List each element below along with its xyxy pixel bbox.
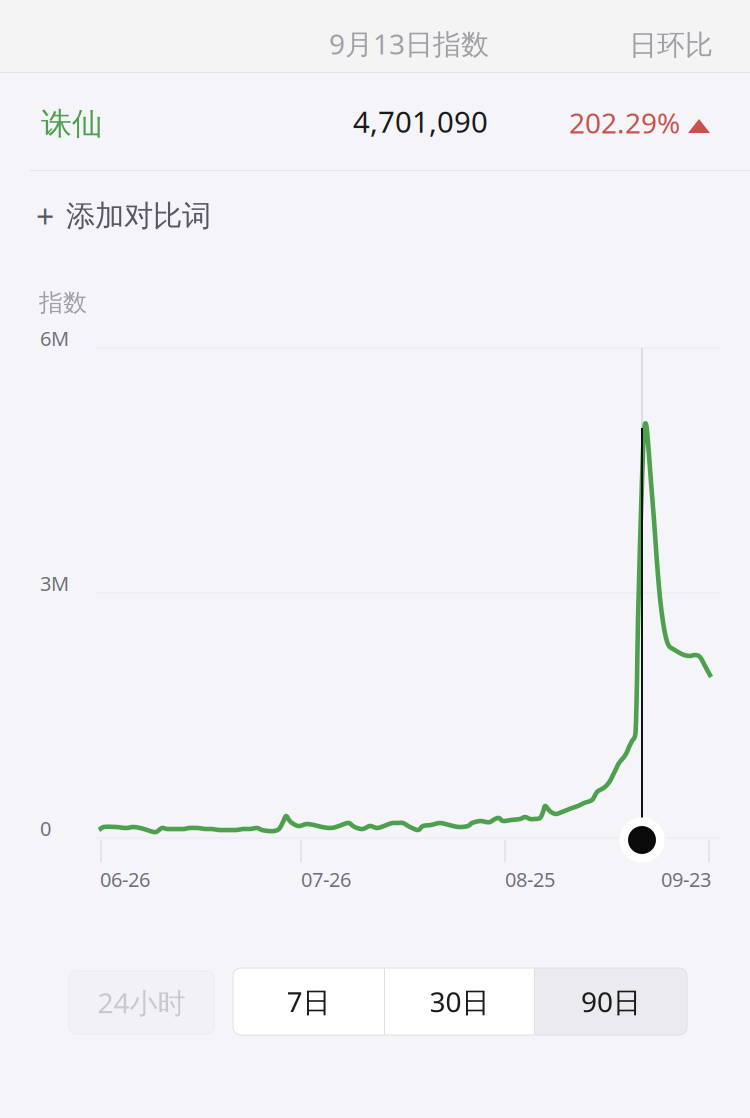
- staticText: 202.29%: [569, 104, 680, 141]
- staticText: 90日: [581, 983, 641, 1020]
- staticText: 诛仙: [41, 105, 103, 143]
- staticText: 日环比: [629, 28, 713, 62]
- staticText: 6M: [40, 325, 69, 352]
- staticText: 0: [40, 815, 51, 842]
- staticText: 07-26: [301, 866, 351, 893]
- staticText: +: [36, 195, 54, 237]
- button[interactable]: 30日: [385, 968, 534, 1035]
- staticText: 9月13日指数: [329, 25, 489, 62]
- staticText: 4,701,090: [353, 102, 488, 141]
- staticText: 24小时: [97, 984, 185, 1021]
- button[interactable]: 7日: [233, 968, 384, 1035]
- button[interactable]: 90日: [535, 968, 687, 1035]
- staticText: 指数: [39, 288, 87, 317]
- staticText: 08-25: [505, 866, 555, 893]
- staticText: 7日: [286, 983, 330, 1020]
- staticText: 30日: [429, 983, 489, 1020]
- button[interactable]: +: [0, 180, 320, 252]
- staticText: 添加对比词: [66, 198, 211, 234]
- staticText: 3M: [40, 570, 69, 597]
- staticText: 09-23: [661, 866, 711, 893]
- button[interactable]: 24小时: [69, 971, 214, 1034]
- staticText: 06-26: [100, 866, 150, 893]
